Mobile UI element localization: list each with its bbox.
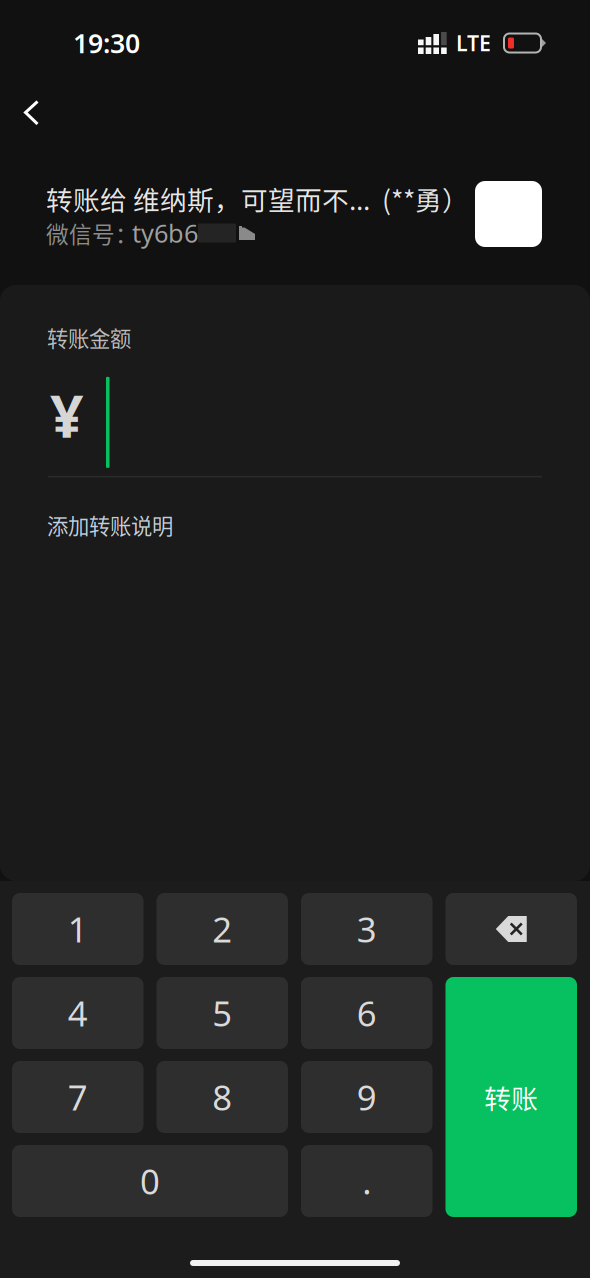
staticText: 8: [212, 1074, 232, 1120]
staticText: 6: [357, 990, 377, 1036]
button[interactable]: 转账: [445, 977, 577, 1217]
button[interactable]: Back: [0, 84, 69, 142]
button[interactable]: 8: [156, 1061, 288, 1133]
staticText: 19:30: [73, 25, 140, 61]
staticText: 转账: [484, 1078, 538, 1116]
staticText: 0: [140, 1158, 160, 1204]
staticText: .: [362, 1158, 371, 1204]
staticText: 9: [357, 1074, 377, 1120]
button[interactable]: 4: [12, 977, 143, 1049]
staticText: 转账给 维纳斯，可望而不... (**勇）: [46, 179, 469, 218]
button[interactable]: 0: [12, 1145, 288, 1217]
staticText: LTE: [456, 29, 491, 57]
staticText: 2: [212, 906, 232, 952]
button[interactable]: 7: [12, 1061, 143, 1133]
staticText: 1: [68, 906, 88, 952]
button[interactable]: Delete: [445, 893, 577, 965]
staticText: ¥: [50, 376, 84, 454]
staticText: 3: [357, 906, 377, 952]
staticText: 7: [68, 1074, 88, 1120]
staticText: 微信号：: [46, 217, 138, 249]
button[interactable]: 3: [301, 893, 432, 965]
button[interactable]: .: [301, 1145, 432, 1217]
button[interactable]: 添加转账说明: [0, 477, 193, 554]
button[interactable]: 2: [156, 893, 288, 965]
button[interactable]: 6: [301, 977, 432, 1049]
staticText: ty6b6: [132, 216, 198, 250]
button[interactable]: 1: [12, 893, 143, 965]
button[interactable]: 9: [301, 1061, 432, 1133]
staticText: 转账金额: [47, 322, 131, 353]
button[interactable]: 5: [156, 977, 288, 1049]
staticText: 4: [68, 990, 88, 1036]
staticText: 5: [212, 990, 232, 1036]
staticText: 添加转账说明: [47, 509, 173, 540]
